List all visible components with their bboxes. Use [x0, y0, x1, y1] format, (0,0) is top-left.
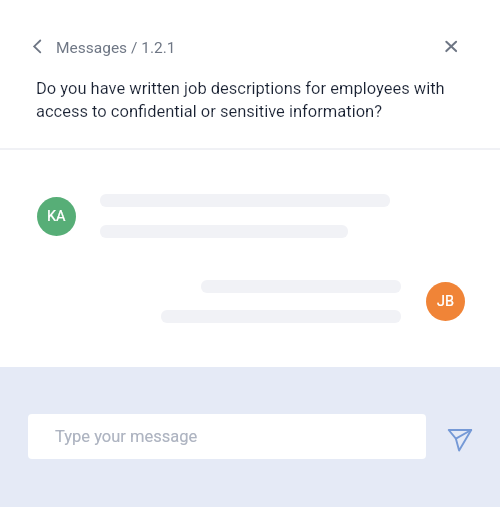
staticText: Type your message: [55, 427, 198, 446]
staticText: JB: [437, 293, 455, 310]
button[interactable]: Messages / 1.2.1: [52, 34, 176, 62]
button[interactable]: KA: [37, 197, 76, 236]
staticText: Do you have written job descriptions for…: [36, 79, 460, 121]
button[interactable]: Type your message: [28, 414, 426, 459]
button[interactable]: Send: [444, 425, 476, 457]
staticText: Messages / 1.2.1: [56, 39, 176, 57]
staticText: KA: [47, 208, 66, 225]
button[interactable]: JB: [426, 282, 465, 321]
button[interactable]: Close: [438, 34, 464, 60]
button[interactable]: Back: [24, 34, 50, 60]
